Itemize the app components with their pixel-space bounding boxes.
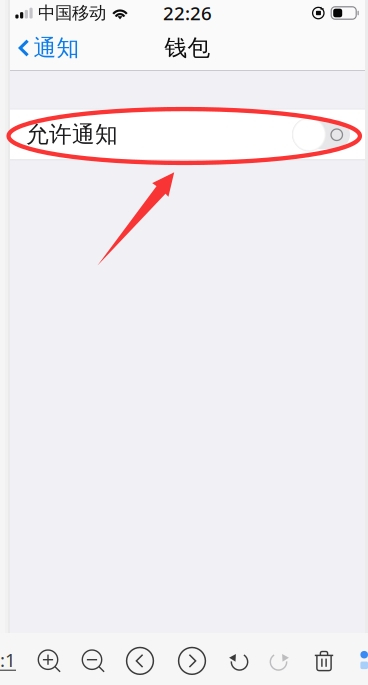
staticText: 钱包 (164, 34, 210, 62)
button[interactable]: Zoom in (29, 641, 67, 679)
staticText: 22:26 (163, 1, 212, 25)
button[interactable]: Actual size (0, 650, 16, 672)
button[interactable]: Next (173, 642, 211, 680)
button[interactable]: Zoom out (73, 641, 111, 679)
button[interactable]: Previous (121, 642, 159, 680)
staticText: 通知 (33, 34, 79, 62)
button[interactable]: Delete (305, 642, 343, 680)
button[interactable]: More (352, 647, 368, 673)
button[interactable]: Rotate left (220, 642, 258, 680)
button[interactable]: 通知 (10, 26, 89, 70)
button[interactable]: Rotate right (260, 642, 298, 680)
button[interactable]: 允许通知 (10, 109, 365, 159)
staticText: :1 (0, 647, 16, 672)
staticText: 中国移动 (38, 2, 106, 24)
staticText: 允许通知 (26, 121, 118, 148)
